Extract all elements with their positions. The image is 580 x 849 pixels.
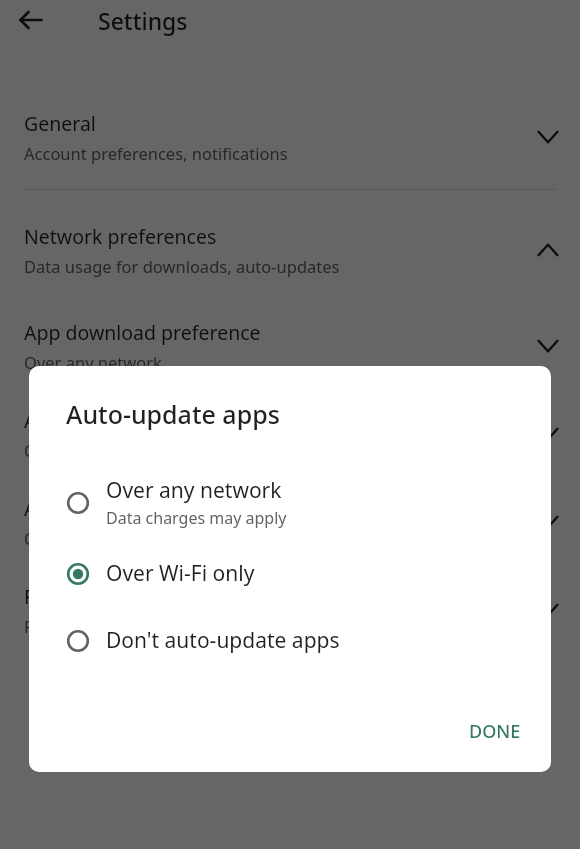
staticText: Data charges may apply [106,507,287,529]
staticText: Require authentication for purchases [24,583,364,610]
button[interactable]: Expand [528,590,568,630]
button[interactable]: Auto-play videos [0,481,580,563]
button[interactable]: Over any network [29,468,551,537]
button[interactable]: Back [11,0,51,40]
button[interactable]: Expand [528,414,568,454]
staticText: App download preference [24,319,261,346]
staticText: Network preferences [24,223,217,250]
staticText: Settings [98,5,188,36]
staticText: Over Wi-Fi only [24,527,141,549]
button[interactable]: Expand [528,326,568,366]
staticText: Auto-play videos [24,495,176,522]
button[interactable]: Auto-update apps [0,393,580,475]
button[interactable]: Collapse [528,230,568,270]
button[interactable]: Don't auto-update apps [29,618,551,663]
staticText: General [24,110,96,137]
staticText: Account preferences, notifications [24,142,288,164]
staticText: Data usage for downloads, auto-updates [24,255,340,277]
staticText: Auto-update apps [24,407,188,434]
staticText: Over Wi-Fi only [106,559,255,588]
staticText: Auto-update apps [66,397,280,431]
staticText: DONE [469,719,521,744]
button[interactable]: Expand [528,502,568,542]
button[interactable]: Expand [528,117,568,157]
button[interactable]: Over Wi-Fi only [29,551,551,596]
button[interactable]: DONE [453,711,537,752]
button[interactable]: App download preference [0,305,580,387]
staticText: Over any network [106,476,282,505]
button[interactable]: Require authentication for purchases [0,569,580,651]
staticText: Over Wi-Fi only [24,439,141,461]
staticText: Fingerprint, purchase authentication [24,615,308,637]
button[interactable]: Network preferences [0,209,580,291]
staticText: Don't auto-update apps [106,626,340,655]
staticText: Over any network [24,351,162,373]
button[interactable]: General [0,96,580,178]
